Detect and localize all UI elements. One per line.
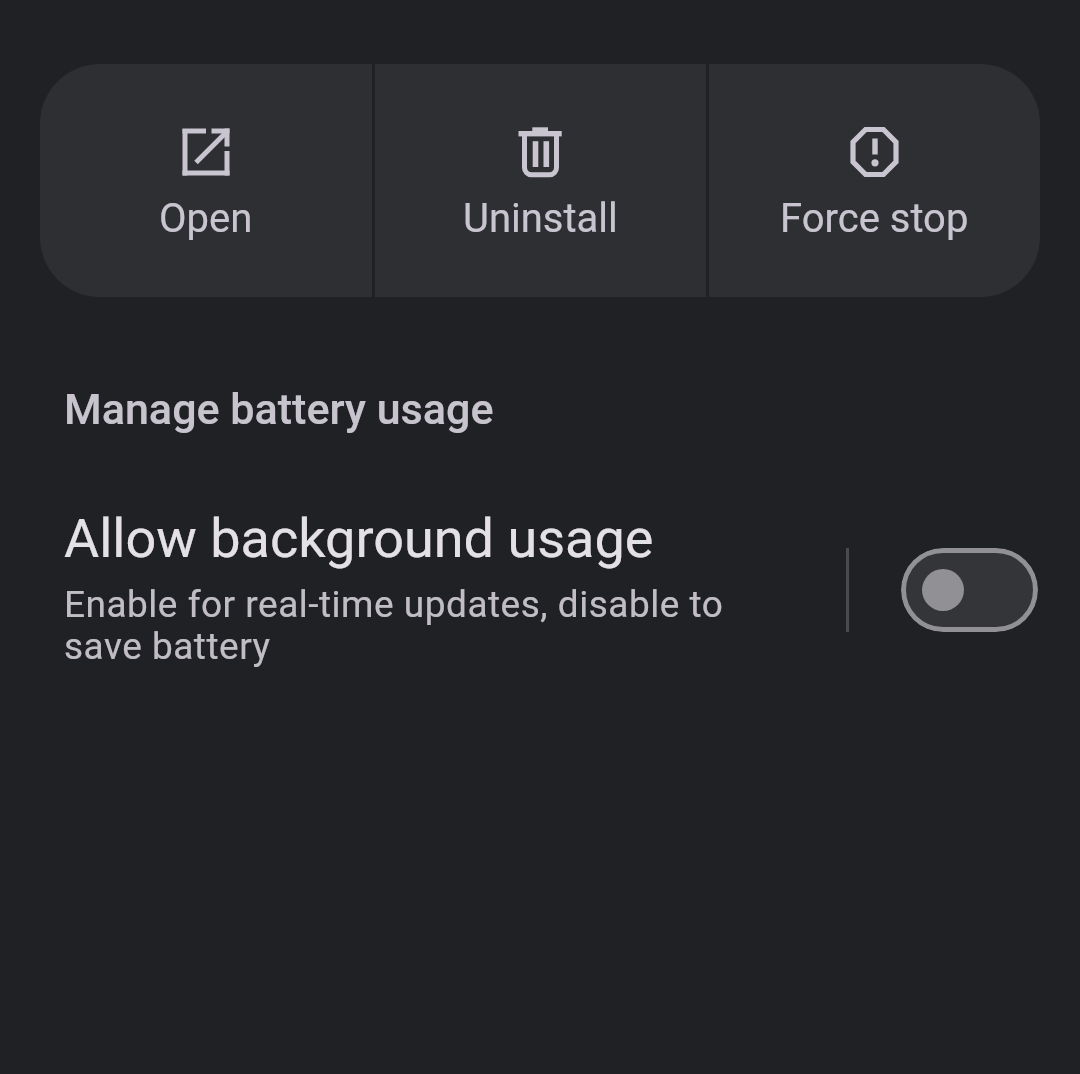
button[interactable]: Allow background usage: [0, 490, 1080, 690]
button[interactable]: [901, 548, 1038, 632]
staticText: save battery: [64, 625, 271, 668]
button[interactable]: Open: [40, 64, 372, 297]
button[interactable]: Uninstall: [375, 64, 706, 297]
staticText: Open: [159, 195, 253, 242]
staticText: Uninstall: [463, 195, 618, 242]
staticText: Force stop: [780, 195, 969, 242]
button[interactable]: Force stop: [709, 64, 1040, 297]
staticText: Allow background usage: [64, 507, 654, 570]
staticText: Enable for real-time updates, disable to: [64, 583, 724, 626]
staticText: Manage battery usage: [64, 384, 494, 434]
